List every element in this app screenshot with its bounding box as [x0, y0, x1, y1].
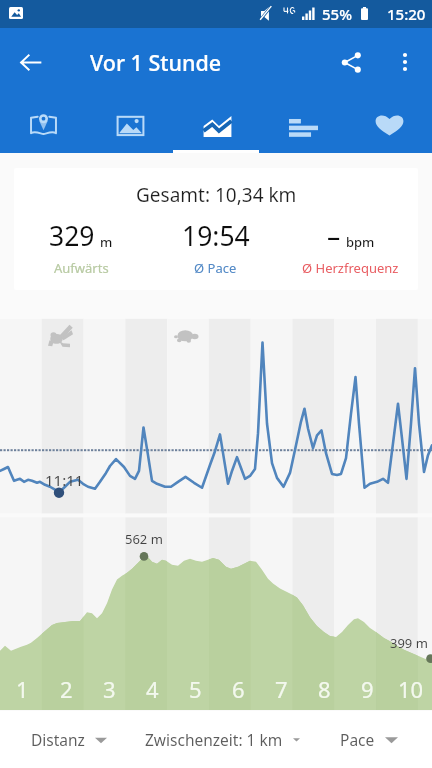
button[interactable]: Zurück — [0, 28, 60, 96]
staticText: 2 — [60, 674, 73, 704]
staticText: bpm — [346, 233, 375, 251]
staticText: Aufwärts — [54, 259, 109, 277]
staticText: m — [100, 233, 113, 251]
staticText: Ø Herzfrequenz — [302, 259, 399, 277]
staticText: 5 — [189, 674, 202, 704]
button[interactable]: Herzfrequenz — [346, 96, 432, 153]
staticText: – — [327, 218, 341, 254]
staticText: 11:11 — [45, 470, 84, 490]
staticText: Distanz — [31, 729, 85, 750]
staticText: Ø Pace — [194, 259, 237, 277]
staticText: 10 — [398, 674, 424, 704]
staticText: 3 — [103, 674, 116, 704]
staticText: Vor 1 Stunde — [90, 48, 222, 77]
staticText: 329 — [49, 218, 95, 254]
button[interactable]: Zwischenzeit: 1 km — [138, 711, 306, 768]
button[interactable]: Fotos — [87, 96, 174, 153]
staticText: 562 m — [125, 530, 163, 548]
button[interactable]: Teilen — [324, 28, 378, 96]
staticText: 15:20 — [387, 4, 426, 24]
button[interactable]: Distanz — [0, 711, 138, 768]
staticText: 8 — [318, 674, 331, 704]
staticText: 1 — [16, 674, 29, 704]
staticText: 55% — [322, 4, 352, 24]
staticText: 6 — [232, 674, 245, 704]
staticText: 9 — [361, 674, 374, 704]
staticText: 399 m — [390, 634, 428, 652]
staticText: 7 — [275, 674, 288, 704]
button[interactable]: Diagramme — [174, 96, 260, 153]
button[interactable]: Weitere Optionen — [378, 28, 432, 96]
button[interactable]: Karte — [0, 96, 87, 153]
staticText: Pace — [340, 729, 375, 750]
staticText: Gesamt: 10,34 km — [136, 182, 297, 208]
staticText: 4 — [146, 674, 159, 704]
button[interactable]: Runden — [260, 96, 346, 153]
button[interactable]: Pace — [306, 711, 432, 768]
staticText: Zwischenzeit: 1 km — [145, 729, 283, 750]
staticText: 19:54 — [182, 218, 250, 254]
